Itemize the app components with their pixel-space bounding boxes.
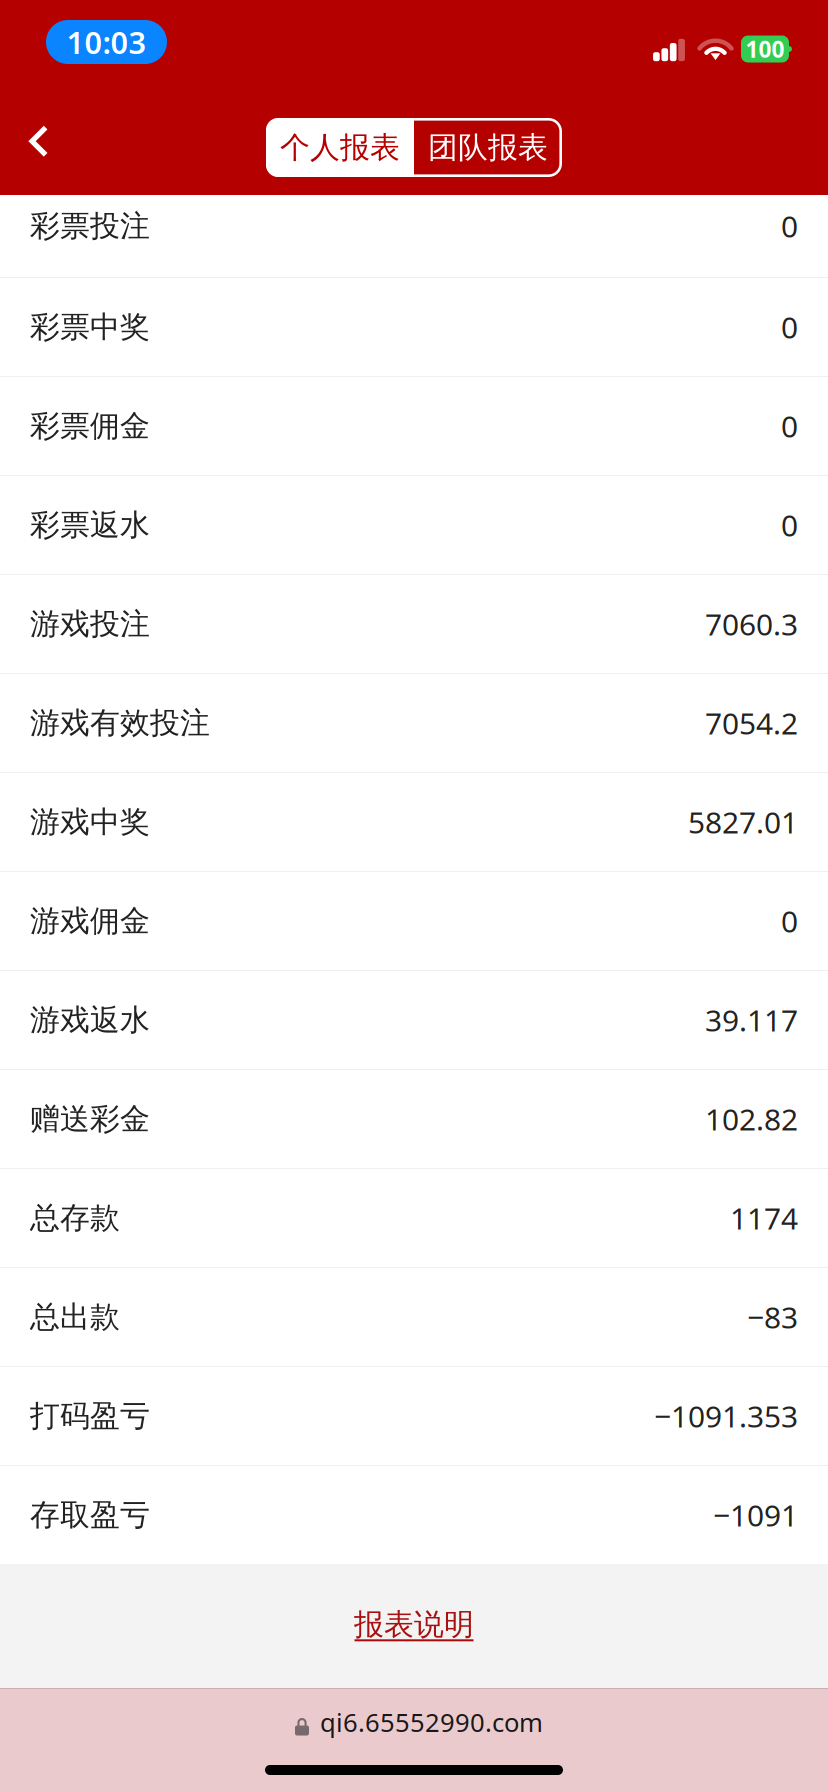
button[interactable]: 彩票佣金 — [0, 377, 828, 475]
staticText: 个人报表 — [280, 129, 400, 166]
staticText: 0 — [781, 406, 798, 446]
staticText: −1091.353 — [654, 1396, 798, 1436]
staticText: 游戏中奖 — [30, 803, 150, 841]
button[interactable]: 游戏投注 — [0, 575, 828, 673]
staticText: 打码盈亏 — [30, 1397, 150, 1435]
staticText: 1174 — [730, 1198, 798, 1238]
button[interactable]: 报表说明 — [0, 1564, 828, 1687]
button[interactable]: 游戏佣金 — [0, 872, 828, 970]
staticText: 彩票返水 — [30, 506, 150, 544]
button[interactable]: 赠送彩金 — [0, 1070, 828, 1168]
staticText: 102.82 — [705, 1099, 798, 1139]
staticText: 0 — [781, 901, 798, 941]
button[interactable]: 游戏返水 — [0, 971, 828, 1069]
button[interactable]: 总存款 — [0, 1169, 828, 1267]
staticText: 总出款 — [30, 1298, 120, 1336]
staticText: 0 — [781, 307, 798, 347]
button[interactable]: 彩票中奖 — [0, 278, 828, 376]
staticText: 100 — [745, 34, 784, 64]
button[interactable]: 游戏有效投注 — [0, 674, 828, 772]
button[interactable]: 个人报表 — [266, 118, 414, 177]
staticText: 游戏投注 — [30, 605, 150, 643]
staticText: −1091 — [713, 1495, 798, 1535]
button[interactable]: Back — [2, 104, 76, 178]
staticText: 0 — [781, 505, 798, 545]
button[interactable]: 存取盈亏 — [0, 1466, 828, 1564]
staticText: 总存款 — [30, 1199, 120, 1237]
button[interactable]: 彩票投注 — [0, 195, 828, 277]
button[interactable]: 游戏中奖 — [0, 773, 828, 871]
staticText: 团队报表 — [428, 129, 548, 166]
button[interactable]: 打码盈亏 — [0, 1367, 828, 1465]
staticText: 0 — [781, 206, 798, 246]
staticText: 游戏返水 — [30, 1001, 150, 1039]
button[interactable]: 彩票返水 — [0, 476, 828, 574]
staticText: 39.117 — [705, 1000, 798, 1040]
staticText: 7054.2 — [705, 703, 798, 743]
staticText: 彩票中奖 — [30, 308, 150, 346]
staticText: 7060.3 — [705, 604, 798, 644]
staticText: 赠送彩金 — [30, 1100, 150, 1138]
staticText: 10:03 — [66, 21, 146, 63]
staticText: 彩票投注 — [30, 207, 150, 245]
staticText: 游戏佣金 — [30, 902, 150, 940]
staticText: 报表说明 — [354, 1606, 474, 1643]
staticText: −83 — [747, 1297, 798, 1337]
staticText: 5827.01 — [688, 802, 798, 842]
staticText: qi6.65552990.com — [320, 1705, 543, 1739]
staticText: 彩票佣金 — [30, 407, 150, 445]
staticText: 游戏有效投注 — [30, 704, 210, 742]
button[interactable]: 总出款 — [0, 1268, 828, 1366]
button[interactable]: 团队报表 — [414, 118, 562, 177]
staticText: 存取盈亏 — [30, 1496, 150, 1534]
